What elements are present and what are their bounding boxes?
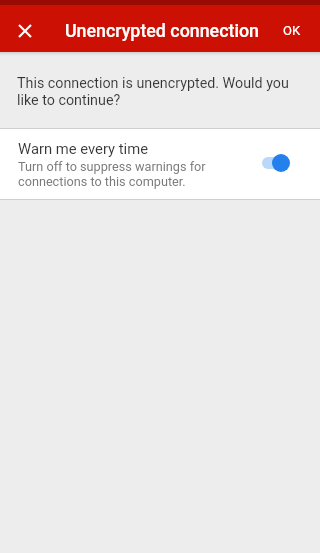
staticText: Unencrypted connection <box>65 20 259 41</box>
staticText: OK <box>283 23 301 38</box>
button[interactable]: Close <box>1 7 49 54</box>
button[interactable]: OK <box>271 9 320 48</box>
button[interactable]: Warn me every time <box>0 129 320 199</box>
button[interactable]: Warn me every time, on <box>262 154 290 172</box>
staticText: This connection is unencrypted. Would yo… <box>17 75 295 109</box>
staticText: Turn off to suppress warnings for connec… <box>18 160 218 190</box>
staticText: Warn me every time <box>18 139 149 158</box>
